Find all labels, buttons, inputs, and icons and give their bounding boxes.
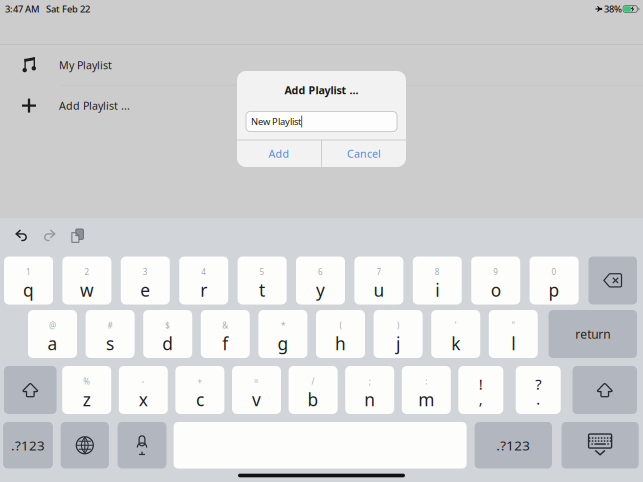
staticText: u [373, 278, 384, 301]
button[interactable]: Shift [572, 366, 637, 414]
staticText: 3 [143, 267, 148, 277]
button[interactable]: 5 [238, 256, 287, 304]
button[interactable]: Next keyboard [61, 422, 109, 468]
button[interactable]: $ [143, 310, 192, 358]
staticText: # [108, 320, 113, 331]
button[interactable]: 4 [179, 256, 228, 304]
staticText: f [222, 332, 228, 355]
button[interactable]: Undo [15, 229, 28, 243]
button[interactable]: : [402, 366, 451, 414]
staticText: r [200, 278, 207, 301]
button[interactable]: 7 [354, 256, 403, 304]
staticText: Add Playlist ... [59, 98, 130, 113]
button[interactable]: ? [516, 366, 561, 414]
button[interactable]: Add [237, 140, 321, 167]
staticText: Add [268, 146, 289, 161]
staticText: 5 [260, 267, 265, 277]
staticText: + [197, 376, 202, 387]
staticText: i [435, 278, 439, 301]
staticText: q [23, 278, 34, 301]
staticText: s [106, 332, 114, 355]
staticText: x [139, 388, 148, 411]
staticText: Sat Feb 22 [46, 3, 90, 15]
button[interactable]: Delete [588, 256, 637, 304]
button[interactable]: Shift [4, 366, 57, 414]
staticText: return [575, 326, 610, 342]
button[interactable]: % [62, 366, 111, 414]
staticText: z [83, 388, 91, 411]
staticText: My Playlist [59, 58, 112, 72]
button[interactable]: + [175, 366, 224, 414]
button[interactable]: & [201, 310, 250, 358]
staticText: & [222, 320, 228, 331]
button[interactable]: 1 [4, 256, 53, 304]
staticText: d [162, 332, 173, 355]
staticText: ? [535, 374, 541, 394]
staticText: g [277, 332, 288, 355]
staticText: New Playlist [251, 115, 301, 128]
button[interactable]: .?123 [3, 422, 53, 468]
staticText: j [396, 332, 400, 355]
staticText: h [335, 332, 346, 355]
staticText: 38% [604, 3, 622, 15]
staticText: @ [49, 320, 56, 331]
button[interactable]: 8 [413, 256, 462, 304]
button[interactable]: 9 [471, 256, 520, 304]
button[interactable]: .?123 [475, 422, 552, 468]
button[interactable]: - [119, 366, 168, 414]
staticText: / [312, 376, 315, 387]
button[interactable]: 0 [530, 256, 579, 304]
button[interactable]: = [232, 366, 281, 414]
staticText: n [364, 388, 375, 411]
staticText: y [316, 278, 325, 301]
staticText: p [549, 278, 560, 301]
staticText: w [80, 278, 94, 301]
staticText: a [47, 332, 57, 355]
button[interactable]: 2 [62, 256, 111, 304]
staticText: b [308, 388, 319, 411]
button[interactable]: " [489, 310, 538, 358]
button[interactable]: Redo [44, 229, 56, 243]
staticText: 1 [26, 267, 31, 277]
button[interactable]: 6 [296, 256, 345, 304]
staticText: 9 [493, 267, 498, 277]
button[interactable]: Dismiss keyboard [561, 422, 639, 468]
staticText: v [252, 388, 261, 411]
button[interactable]: @ [28, 310, 77, 358]
button[interactable]: Paste [71, 228, 84, 243]
button[interactable]: ; [345, 366, 394, 414]
button[interactable]: Cancel [322, 140, 406, 167]
staticText: 0 [552, 267, 557, 277]
button[interactable]: My Playlist [0, 45, 643, 85]
button[interactable]: 3 [121, 256, 170, 304]
button[interactable]: ! [458, 366, 503, 414]
staticText: Add Playlist ... [284, 83, 358, 97]
button[interactable]: Dictation [118, 422, 166, 468]
staticText: .?123 [496, 436, 530, 454]
button[interactable]: ' [431, 310, 480, 358]
staticText: " [512, 320, 515, 331]
staticText: - [142, 376, 145, 387]
button[interactable]: return [549, 310, 637, 358]
button[interactable]: * [258, 310, 307, 358]
staticText: $ [165, 320, 170, 331]
button[interactable]: ) [374, 310, 423, 358]
staticText: , [479, 389, 483, 409]
button[interactable]: / [289, 366, 338, 414]
staticText: Cancel [347, 146, 381, 161]
staticText: : [425, 376, 427, 387]
staticText: ! [479, 374, 483, 394]
staticText: m [418, 388, 434, 411]
staticText: e [140, 278, 150, 301]
staticText: o [491, 278, 501, 301]
staticText: . [536, 389, 540, 409]
button[interactable]: # [86, 310, 135, 358]
staticText: 7 [376, 267, 381, 277]
staticText: % [83, 376, 90, 387]
staticText: 3:47 AM [5, 3, 40, 15]
button[interactable]: Add Playlist ... [0, 86, 643, 126]
staticText: ; [369, 376, 371, 387]
button[interactable]: ( [316, 310, 365, 358]
staticText: k [451, 332, 460, 355]
